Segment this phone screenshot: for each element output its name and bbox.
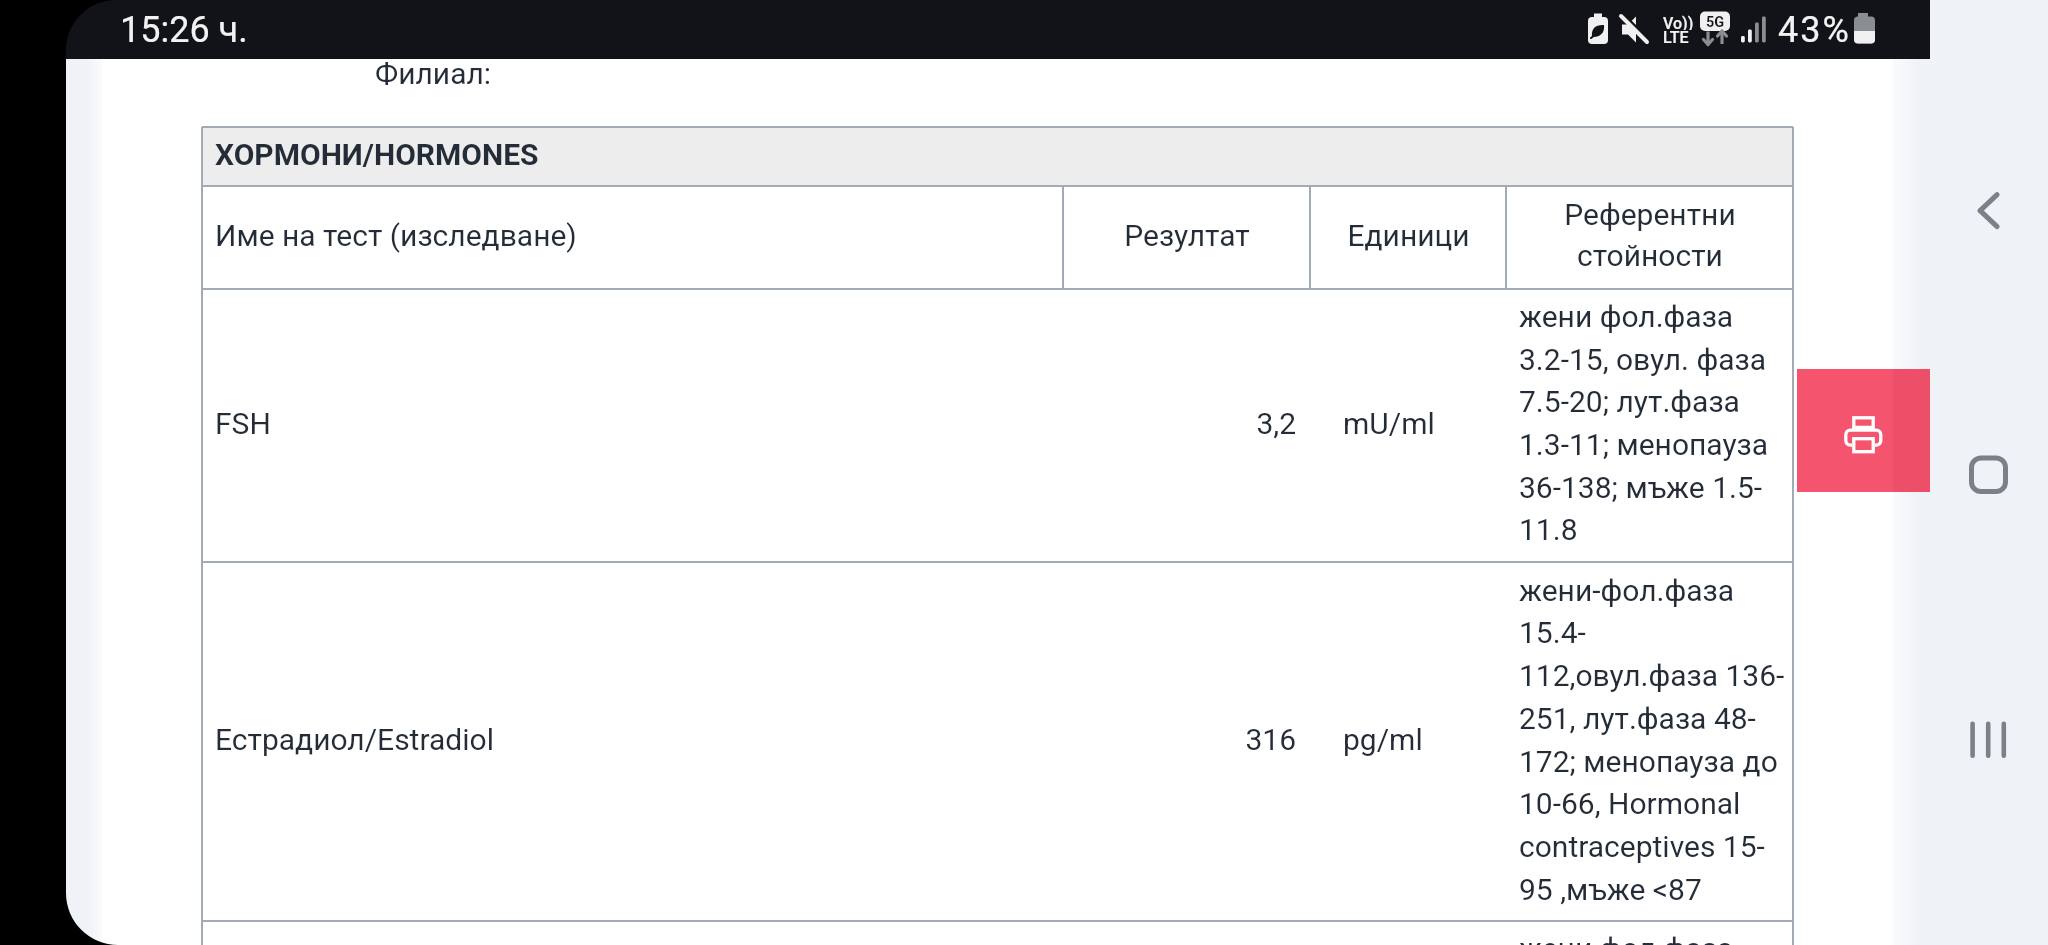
staticText: стойности (1577, 238, 1723, 273)
button[interactable]: Print (1797, 369, 1930, 492)
staticText: жени фол.фаза (1519, 299, 1734, 334)
staticText: Vo)) (1663, 14, 1694, 30)
staticText: жени-фол.фаза (1519, 573, 1735, 608)
staticText: LTE (1663, 28, 1689, 44)
staticText: 3,2 (1256, 406, 1296, 441)
staticText: 1.3-11; менопауза (1519, 427, 1769, 462)
staticText: 11.8 (1519, 512, 1578, 547)
staticText: pg/ml (1343, 722, 1423, 757)
staticText: Естрадиол/Estradiol (215, 722, 494, 757)
staticText: 15:26 ч. (120, 9, 248, 51)
staticText: ХОРМОНИ/HORMONES (215, 137, 539, 172)
staticText: contraceptives 15- (1519, 829, 1765, 864)
staticText: 36-138; мъже 1.5- (1519, 470, 1763, 505)
staticText: FSH (215, 406, 271, 441)
staticText: 43% (1778, 9, 1851, 51)
staticText: mU/ml (1343, 406, 1435, 441)
staticText: Филиал: (375, 56, 492, 91)
staticText: 10-66, Hormonal (1519, 786, 1741, 821)
staticText: 316 (1245, 722, 1296, 757)
button[interactable]: Home (1930, 415, 2048, 535)
staticText: Резултат (1124, 218, 1250, 253)
staticText: Име на тест (изследване) (215, 218, 577, 253)
staticText: 7.5-20; лут.фаза (1519, 384, 1740, 419)
staticText: 251, лут.фаза 48- (1519, 701, 1756, 736)
button[interactable]: Back (1930, 150, 2048, 270)
staticText: 15.4- (1519, 615, 1586, 650)
staticText: 3.2-15, овул. фаза (1519, 342, 1767, 377)
staticText: 172; менопауза до (1519, 744, 1778, 779)
staticText: 5G (1706, 14, 1725, 31)
staticText: 95 ,мъже <87 (1519, 872, 1702, 907)
staticText: жени фол.фаза (1519, 931, 1734, 945)
staticText: Референтни (1564, 197, 1736, 232)
staticText: 112,овул.фаза 136- (1519, 658, 1785, 693)
button[interactable]: Recent apps (1930, 680, 2048, 800)
staticText: Единици (1347, 218, 1470, 253)
